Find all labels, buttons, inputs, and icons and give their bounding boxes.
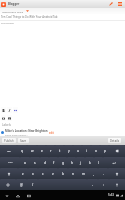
staticText: u	[77, 149, 79, 153]
staticText: e	[41, 149, 43, 153]
button[interactable]: f	[49, 157, 58, 168]
button[interactable]: New post	[106, 0, 115, 8]
button[interactable]: r	[46, 145, 55, 157]
staticText: v	[52, 172, 54, 176]
button[interactable]: z	[18, 168, 28, 179]
button[interactable]: Blogger	[1, 2, 6, 7]
button[interactable]: x	[28, 168, 38, 179]
button[interactable]: Bold	[1, 107, 6, 113]
staticText: b	[62, 172, 64, 176]
button[interactable]: k	[85, 157, 94, 168]
staticText: i	[86, 149, 87, 153]
staticText: Labels	[2, 123, 12, 127]
button[interactable]: a	[20, 157, 30, 168]
button[interactable]: q	[17, 145, 27, 157]
button[interactable]: Ten Cool Things to Do With Your Android …	[0, 14, 125, 20]
button[interactable]: Details	[108, 138, 121, 143]
staticText: z	[22, 172, 24, 176]
staticText: Publish	[4, 139, 14, 143]
button[interactable]: Recent apps	[25, 192, 32, 199]
button[interactable]: e	[37, 145, 46, 157]
button[interactable]: b	[58, 168, 68, 179]
staticText: a	[24, 161, 26, 165]
staticText: Post content	[1, 22, 14, 25]
staticText: h	[71, 161, 73, 165]
staticText: r	[50, 149, 52, 153]
button[interactable]: v	[48, 168, 58, 179]
button[interactable]: ?123	[0, 157, 20, 168]
staticText: m	[82, 172, 85, 176]
staticText: Blogger	[8, 2, 20, 6]
staticText: l	[98, 161, 99, 165]
button[interactable]: Shift	[108, 168, 125, 179]
button[interactable]: u	[73, 145, 82, 157]
button[interactable]: Space	[38, 179, 87, 190]
button[interactable]: Voice input	[109, 179, 125, 190]
button[interactable]: .	[98, 168, 108, 179]
button[interactable]: Mike's Location: New Brighton	[0, 129, 125, 136]
staticText: edit	[49, 131, 54, 135]
button[interactable]: w	[27, 145, 37, 157]
button[interactable]: p	[100, 145, 109, 157]
button[interactable]: Settings	[0, 179, 16, 190]
button[interactable]: Publish	[2, 138, 16, 143]
staticText: Save	[20, 139, 27, 143]
button[interactable]: m	[78, 168, 88, 179]
button[interactable]: Labels	[115, 0, 124, 8]
staticText: ,	[93, 172, 94, 176]
staticText: t	[59, 149, 61, 153]
button[interactable]: n	[68, 168, 78, 179]
button[interactable]: j	[76, 157, 85, 168]
button[interactable]: Backspace	[109, 145, 125, 157]
button[interactable]: Save	[18, 138, 29, 143]
button[interactable]: Link	[13, 107, 18, 113]
button[interactable]: @	[16, 179, 27, 190]
button[interactable]: Home	[14, 192, 21, 199]
staticText: s	[34, 161, 36, 165]
staticText: 5:43	[108, 193, 114, 197]
button[interactable]: Hide keyboard	[3, 192, 10, 199]
button[interactable]: h	[67, 157, 76, 168]
button[interactable]: g	[58, 157, 67, 168]
button[interactable]: c	[38, 168, 48, 179]
button[interactable]: Add image	[7, 115, 12, 121]
button[interactable]: Enter	[103, 157, 125, 168]
button[interactable]: Shift	[0, 168, 18, 179]
button[interactable]: ,	[88, 168, 98, 179]
staticText: f	[53, 161, 55, 165]
staticText: o	[95, 149, 97, 153]
button[interactable]: i	[82, 145, 91, 157]
staticText: k	[89, 161, 91, 165]
button[interactable]: l	[94, 157, 103, 168]
staticText: d	[44, 161, 46, 165]
button[interactable]: :	[98, 179, 109, 190]
staticText: y	[68, 149, 70, 153]
button[interactable]: d	[40, 157, 49, 168]
staticText: @	[20, 183, 23, 187]
button[interactable]: Italic	[7, 107, 12, 113]
button[interactable]: s	[30, 157, 40, 168]
staticText: x	[32, 172, 34, 176]
staticText: Ten Cool Things to Do With Your Android …	[1, 15, 58, 19]
staticText: p	[104, 149, 106, 153]
button[interactable]: t	[55, 145, 64, 157]
staticText: q	[21, 149, 23, 153]
staticText: -	[92, 183, 94, 187]
button[interactable]: o	[91, 145, 100, 157]
staticText: g	[62, 161, 64, 165]
button[interactable]: /	[27, 179, 38, 190]
staticText: Mike's Location: New Brighton	[5, 129, 48, 133]
staticText: w	[31, 149, 34, 153]
staticText: /	[32, 183, 34, 187]
button[interactable]: mikeychen's place	[0, 8, 125, 14]
staticText: Details	[110, 139, 119, 143]
staticText: :	[103, 183, 104, 187]
button[interactable]: -	[87, 179, 98, 190]
button[interactable]: Tab	[0, 145, 17, 157]
button[interactable]: Take photo	[1, 115, 6, 121]
button[interactable]: y	[64, 145, 73, 157]
button[interactable]: Post content	[0, 21, 125, 26]
staticText: ?123	[8, 161, 13, 164]
staticText: c	[42, 172, 44, 176]
staticText: j	[80, 161, 81, 165]
